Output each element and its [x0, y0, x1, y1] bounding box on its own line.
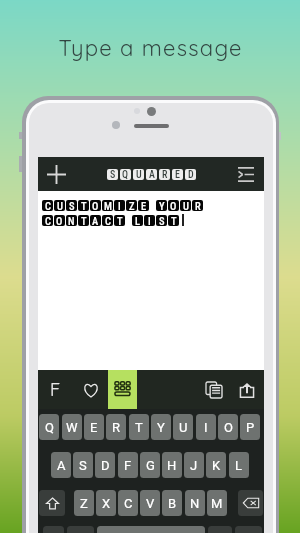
button[interactable]: C	[118, 490, 138, 516]
staticText: A	[92, 215, 99, 226]
staticText: U	[136, 169, 142, 180]
staticText: S	[159, 215, 165, 226]
button[interactable]: Numbers	[43, 526, 64, 533]
button[interactable]: S	[73, 452, 93, 478]
staticText: Z	[129, 200, 135, 211]
button[interactable]: H	[162, 452, 182, 478]
staticText: I	[118, 200, 121, 211]
button[interactable]: Space	[97, 526, 205, 533]
button[interactable]: B	[162, 490, 182, 516]
button[interactable]: J	[184, 452, 204, 478]
staticText: J	[190, 458, 198, 473]
button[interactable]: K	[206, 452, 226, 478]
staticText: N	[68, 215, 75, 226]
staticText: U	[57, 200, 63, 211]
staticText: K	[212, 458, 221, 473]
staticText: M	[104, 200, 112, 211]
staticText: R	[195, 200, 201, 211]
staticText: P	[246, 420, 255, 435]
staticText: H	[167, 458, 177, 473]
button[interactable]: W	[62, 414, 82, 440]
button[interactable]: Share	[230, 370, 264, 409]
staticText: Q	[122, 169, 129, 180]
button[interactable]: V	[140, 490, 160, 516]
staticText: Type a message	[58, 34, 243, 62]
button[interactable]: M	[207, 490, 227, 516]
button[interactable]: Favorites	[73, 370, 108, 409]
staticText: T	[171, 215, 177, 226]
staticText: R	[112, 420, 121, 435]
button[interactable]: Z	[74, 490, 94, 516]
button[interactable]: F	[118, 452, 138, 478]
button[interactable]: Keyboard	[108, 370, 137, 409]
staticText: L	[235, 458, 243, 473]
button[interactable]: Emoji	[67, 526, 94, 533]
staticText: S	[79, 458, 87, 473]
staticText: U	[179, 420, 188, 435]
staticText: Y	[159, 200, 165, 211]
staticText: U	[183, 200, 189, 211]
staticText: V	[146, 496, 155, 511]
staticText: E	[175, 169, 180, 180]
button[interactable]: Backspace	[238, 490, 263, 516]
staticText: I	[204, 420, 208, 435]
button[interactable]: Period	[208, 526, 232, 533]
staticText: C	[45, 200, 51, 211]
staticText: F	[124, 458, 132, 473]
button[interactable]: L	[229, 452, 249, 478]
button[interactable]: Shift	[39, 490, 65, 516]
staticText: S	[69, 200, 75, 211]
staticText: A	[149, 169, 155, 180]
staticText: T	[117, 215, 123, 226]
button[interactable]: U	[173, 414, 193, 440]
staticText: E	[141, 200, 147, 211]
staticText: L	[135, 215, 141, 226]
button[interactable]: Return	[235, 526, 262, 533]
staticText: C	[105, 215, 111, 226]
button[interactable]: D	[95, 452, 115, 478]
staticText: E	[90, 420, 98, 435]
staticText: O	[170, 200, 177, 211]
staticText: Y	[157, 420, 165, 435]
staticText: N	[190, 496, 200, 511]
staticText: I	[148, 215, 151, 226]
staticText: C	[45, 215, 51, 226]
staticText: X	[102, 496, 111, 511]
button[interactable]: Y	[151, 414, 171, 440]
button[interactable]: Add	[39, 157, 73, 191]
staticText: O	[56, 215, 63, 226]
button[interactable]: T	[129, 414, 149, 440]
staticText: O	[224, 420, 233, 435]
button[interactable]: G	[140, 452, 160, 478]
staticText: W	[66, 420, 78, 435]
staticText: Q	[45, 420, 54, 435]
staticText: T	[81, 200, 87, 211]
staticText: F	[50, 378, 61, 401]
button[interactable]: O	[218, 414, 238, 440]
button[interactable]: X	[96, 490, 116, 516]
staticText: T	[81, 215, 87, 226]
staticText: A	[57, 458, 66, 473]
button[interactable]: Copy	[197, 370, 231, 409]
staticText: D	[188, 169, 194, 180]
button[interactable]: I	[196, 414, 216, 440]
staticText: S	[110, 169, 116, 180]
staticText: G	[146, 458, 155, 473]
button[interactable]: Q	[39, 414, 59, 440]
button[interactable]: P	[240, 414, 260, 440]
button[interactable]: Fonts	[38, 370, 72, 409]
button[interactable]: R	[106, 414, 126, 440]
button[interactable]: E	[84, 414, 104, 440]
button[interactable]: A	[51, 452, 71, 478]
staticText: Z	[80, 496, 88, 511]
staticText: B	[168, 496, 177, 511]
staticText: M	[211, 496, 223, 511]
staticText: O	[92, 200, 99, 211]
staticText: T	[135, 420, 143, 435]
staticText: R	[162, 169, 168, 180]
button[interactable]: Menu	[229, 157, 263, 191]
button[interactable]: N	[185, 490, 205, 516]
staticText: C	[124, 496, 133, 511]
staticText: D	[101, 458, 110, 473]
